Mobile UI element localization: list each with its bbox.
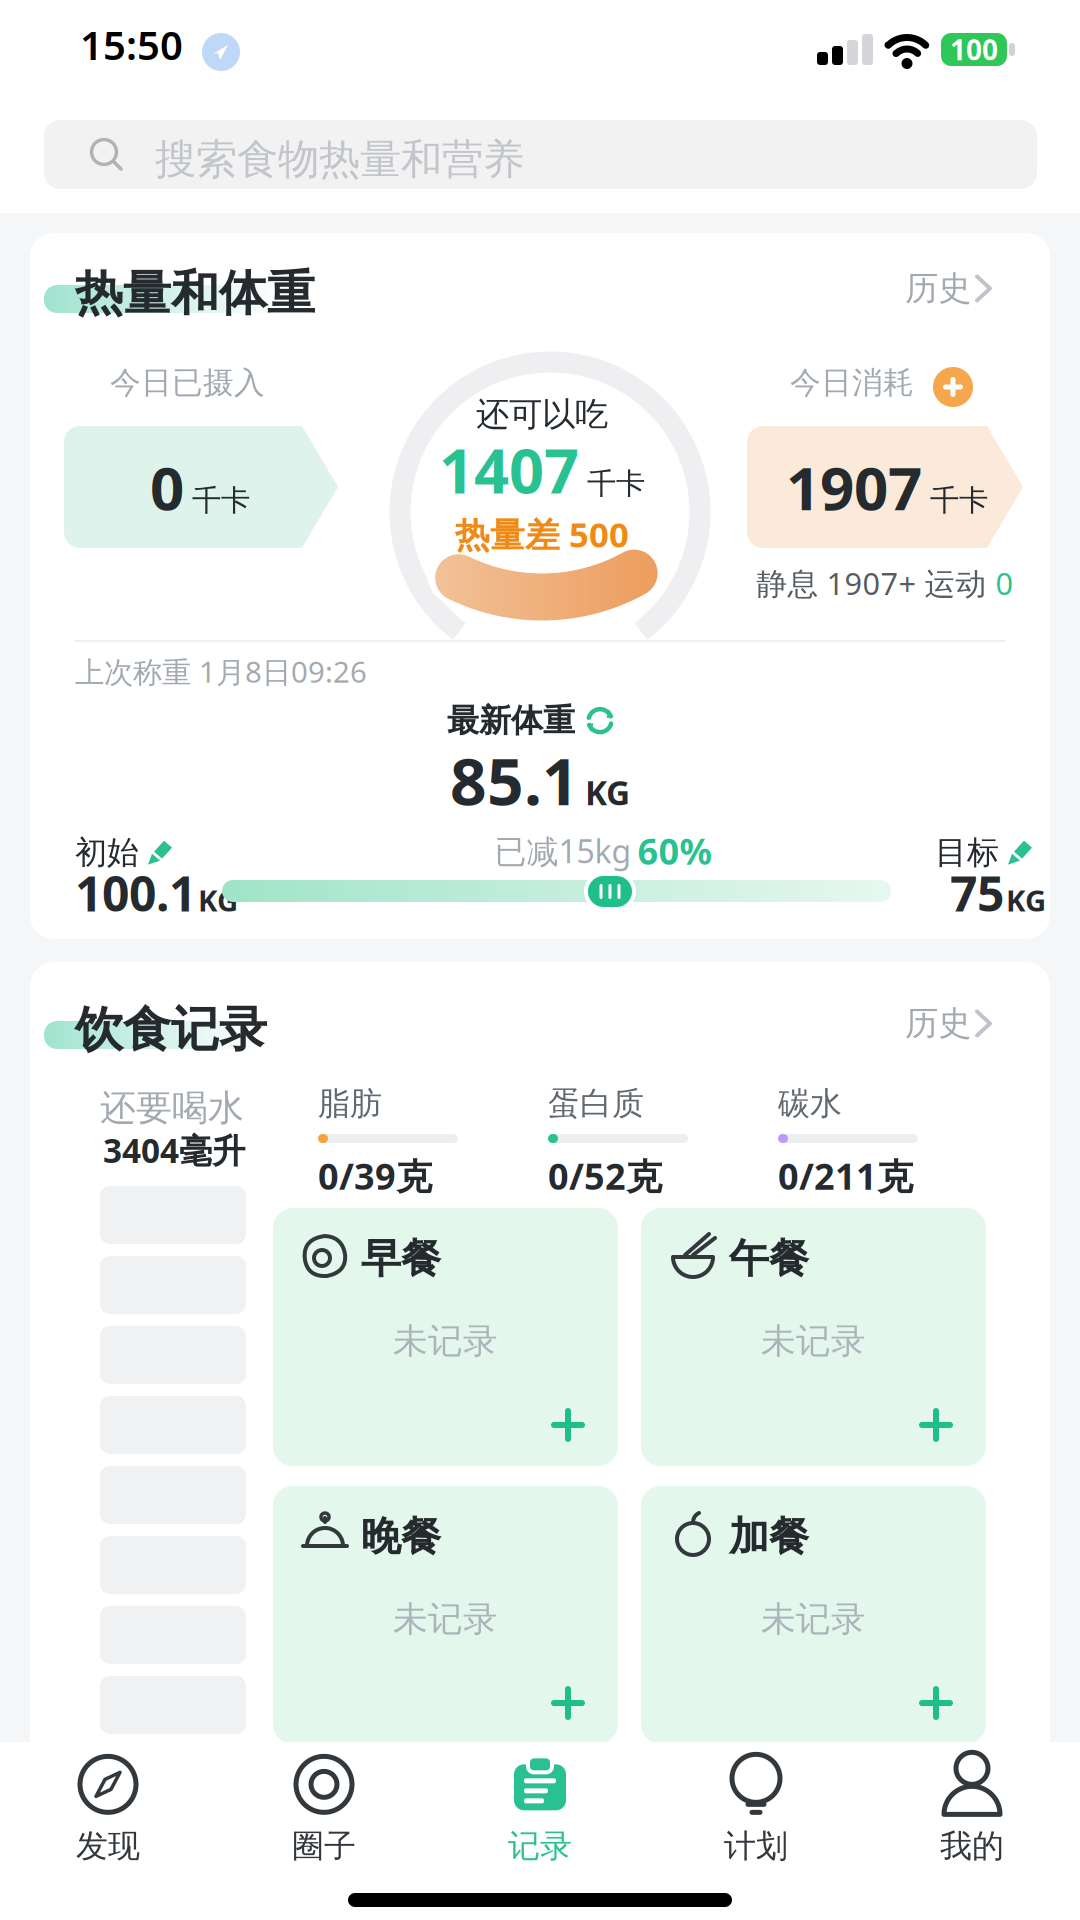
staticText: 今日消耗 (790, 364, 914, 402)
button[interactable]: 目标 (935, 833, 1033, 872)
staticText: 午餐 (729, 1234, 809, 1283)
button[interactable]: 我的 (864, 1744, 1080, 1874)
staticText: 热量和体重 (75, 264, 315, 323)
button[interactable]: 历史 (905, 268, 990, 309)
staticText: 加餐 (729, 1512, 809, 1561)
staticText: 静息 1907+ 运动 (756, 563, 995, 603)
staticText: 1407 (439, 429, 579, 510)
staticText: 100 (950, 31, 998, 68)
staticText: 千卡 (192, 482, 250, 518)
staticText: 未记录 (761, 1598, 866, 1641)
button[interactable]: 计划 (648, 1744, 864, 1874)
button[interactable]: 晚餐 (273, 1486, 618, 1744)
staticText: 已减15kg (494, 830, 631, 872)
staticText: 热量差 500 (455, 511, 629, 557)
staticText: 搜索食物热量和营养 (155, 134, 524, 185)
button[interactable]: 早餐 (273, 1208, 618, 1466)
staticText: 60% (637, 827, 711, 875)
staticText: 上次称重 1月8日09:26 (75, 652, 367, 691)
staticText: 未记录 (393, 1320, 498, 1363)
staticText: 记录 (508, 1826, 572, 1866)
staticText: 3404毫升 (103, 1128, 245, 1172)
staticText: 晚餐 (361, 1512, 441, 1561)
staticText: 还可以吃 (476, 394, 608, 435)
button[interactable]: 发现 (0, 1744, 216, 1874)
staticText: 75 (950, 861, 1004, 925)
staticText: 历史 (905, 1003, 971, 1044)
button[interactable]: 初始 (75, 833, 173, 872)
button[interactable]: 搜索食物热量和营养 (44, 120, 1037, 189)
staticText: 早餐 (361, 1234, 441, 1283)
staticText: 0 (150, 447, 184, 527)
staticText: 圈子 (292, 1826, 356, 1866)
staticText: KG (198, 881, 238, 920)
staticText: 未记录 (761, 1320, 866, 1363)
staticText: 目标 (935, 833, 999, 872)
button[interactable]: 午餐 (641, 1208, 986, 1466)
staticText: 我的 (940, 1826, 1004, 1866)
staticText: 还要喝水 (100, 1086, 244, 1130)
staticText: 发现 (76, 1826, 140, 1866)
button[interactable]: 最新体重 (447, 701, 615, 740)
staticText: 100.1 (75, 861, 196, 925)
staticText: 0 (995, 563, 1013, 603)
staticText: 0/52克 (548, 1152, 662, 1200)
staticText: 最新体重 (447, 701, 575, 740)
staticText: 历史 (905, 268, 971, 309)
staticText: 0/39克 (318, 1152, 432, 1200)
button[interactable]: 历史 (905, 1003, 990, 1044)
button[interactable]: 添加运动 (933, 367, 973, 407)
staticText: 千卡 (930, 482, 988, 518)
staticText: 脂肪 (318, 1084, 382, 1123)
button[interactable]: 圈子 (216, 1744, 432, 1874)
staticText: 1907 (786, 447, 922, 527)
staticText: 饮食记录 (75, 1000, 267, 1059)
button[interactable]: 加餐 (641, 1486, 986, 1744)
staticText: 0/211克 (778, 1152, 913, 1200)
staticText: 蛋白质 (548, 1084, 644, 1123)
staticText: KG (585, 770, 630, 815)
staticText: 初始 (75, 833, 139, 872)
staticText: 碳水 (778, 1084, 842, 1123)
staticText: 千卡 (587, 466, 645, 502)
staticText: 今日已摄入 (110, 364, 265, 402)
staticText: 计划 (724, 1826, 788, 1866)
staticText: KG (1006, 881, 1046, 920)
staticText: 15:50 (80, 18, 183, 71)
staticText: 未记录 (393, 1598, 498, 1641)
staticText: 85.1 (450, 738, 579, 823)
button[interactable]: 记录 (432, 1744, 648, 1874)
